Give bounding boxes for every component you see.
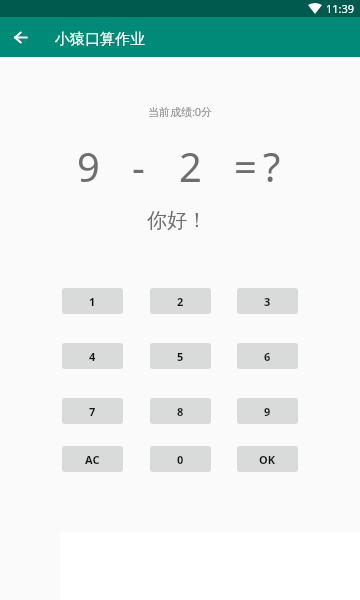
button[interactable]: OK: [237, 446, 298, 472]
button[interactable]: 5: [150, 343, 211, 369]
staticText: 7: [89, 404, 96, 419]
staticText: 6: [264, 349, 271, 364]
button[interactable]: 4: [62, 343, 123, 369]
button[interactable]: 8: [150, 398, 211, 424]
staticText: 11:39: [326, 1, 355, 16]
staticText: -: [132, 139, 145, 193]
staticText: 4: [89, 349, 96, 364]
button[interactable]: 1: [62, 288, 123, 314]
staticText: 8: [177, 404, 184, 419]
staticText: 5: [177, 349, 184, 364]
button[interactable]: 3: [237, 288, 298, 314]
button[interactable]: Back: [0, 17, 40, 57]
button[interactable]: 9: [237, 398, 298, 424]
button[interactable]: 2: [150, 288, 211, 314]
staticText: 你好！: [0, 208, 357, 233]
staticText: 2: [179, 139, 202, 193]
staticText: 9: [77, 139, 100, 193]
staticText: ?: [263, 139, 281, 193]
staticText: 3: [264, 294, 271, 309]
staticText: 0: [177, 452, 184, 467]
staticText: OK: [259, 452, 276, 467]
button[interactable]: 6: [237, 343, 298, 369]
button[interactable]: 7: [62, 398, 123, 424]
staticText: =: [234, 139, 257, 193]
button[interactable]: AC: [62, 446, 123, 472]
staticText: 小猿口算作业: [55, 30, 145, 49]
staticText: 当前成绩:0分: [0, 104, 360, 119]
staticText: AC: [85, 452, 100, 467]
staticText: 2: [177, 294, 184, 309]
staticText: 1: [89, 294, 96, 309]
staticText: 9: [264, 404, 271, 419]
button[interactable]: 0: [150, 446, 211, 472]
